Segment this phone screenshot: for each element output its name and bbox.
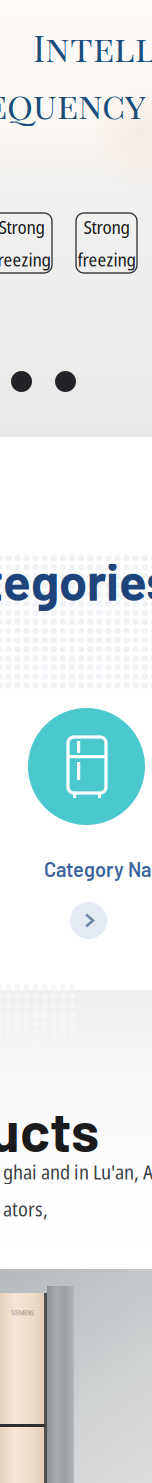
staticText: Strong xyxy=(83,214,129,239)
staticText: Strong xyxy=(0,214,44,239)
staticText: Categories xyxy=(0,550,152,611)
staticText: Products xyxy=(0,1096,99,1163)
staticText: Intelligent xyxy=(33,23,152,71)
button[interactable]: Next category xyxy=(70,902,107,939)
staticText: freezing xyxy=(77,246,135,272)
button[interactable]: Strong xyxy=(0,213,52,273)
button[interactable]: Slide 2 xyxy=(55,371,76,392)
button[interactable]: Slide 1 xyxy=(11,371,32,392)
staticText: Category Name xyxy=(44,857,152,881)
staticText: freezing xyxy=(0,246,50,272)
staticText: Frequency xyxy=(0,80,146,128)
staticText: ators, xyxy=(3,1195,48,1222)
button[interactable]: Strong xyxy=(76,213,137,273)
staticText: ghai and in Lu'an, An xyxy=(3,1158,152,1185)
staticText: SIEMENS xyxy=(11,1308,34,1317)
